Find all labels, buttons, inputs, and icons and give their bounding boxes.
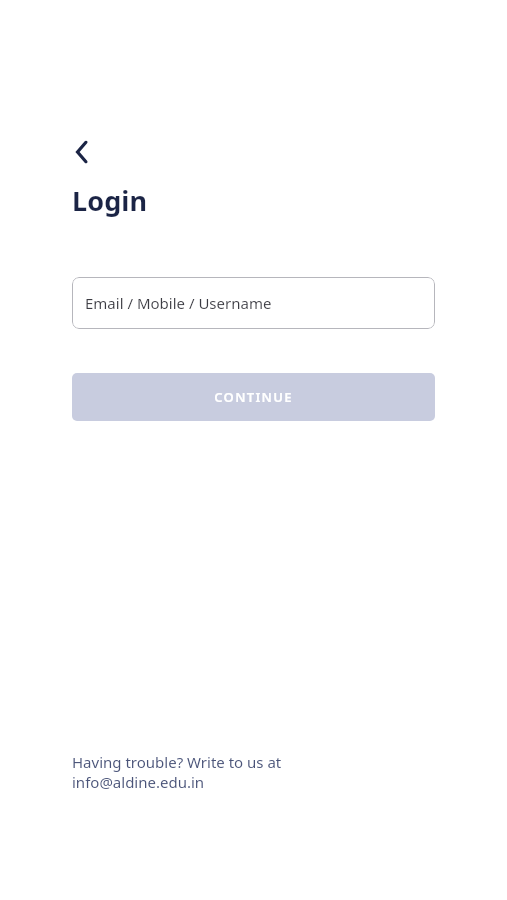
staticText: Login <box>72 182 148 219</box>
button[interactable]: CONTINUE <box>72 373 435 421</box>
button[interactable]: Having trouble? Write to us at <box>72 752 282 792</box>
staticText: Email / Mobile / Username <box>85 293 272 313</box>
staticText: info@aldine.edu.in <box>72 772 205 792</box>
staticText: CONTINUE <box>214 388 293 406</box>
button[interactable]: Back <box>64 134 100 170</box>
button[interactable]: Email / Mobile / Username <box>72 277 435 329</box>
staticText: Having trouble? Write to us at <box>72 752 282 772</box>
